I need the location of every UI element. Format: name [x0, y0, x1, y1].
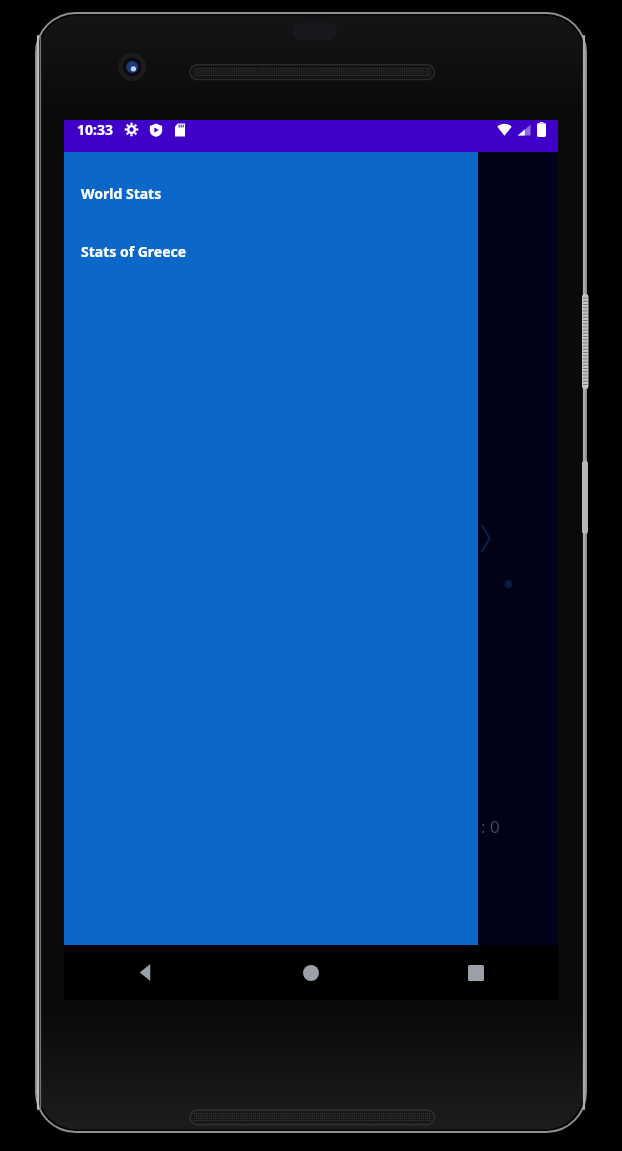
- staticText: 10:33: [77, 120, 113, 139]
- button[interactable]: Back: [64, 945, 228, 1000]
- button[interactable]: Home: [228, 945, 393, 1000]
- staticText: : 0: [481, 815, 500, 838]
- button[interactable]: World Stats: [64, 178, 478, 208]
- staticText: World Stats: [81, 184, 162, 203]
- button[interactable]: Recent apps: [393, 945, 558, 1000]
- button[interactable]: Stats of Greece: [64, 236, 478, 266]
- staticText: Stats of Greece: [81, 242, 187, 261]
